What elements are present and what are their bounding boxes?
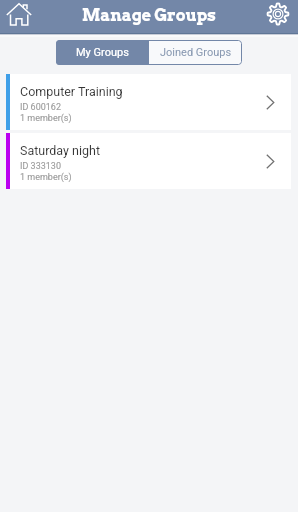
staticText: My Groups [76,46,129,59]
staticText: 1 member(s) [20,172,72,183]
staticText: Computer Training [20,84,123,99]
button[interactable]: My Groups [56,40,149,65]
button[interactable]: Computer Training [6,74,291,130]
button[interactable]: Saturday night [6,133,291,189]
staticText: ID 333130 [20,161,61,172]
staticText: 1 member(s) [20,113,72,124]
staticText: Manage Groups [82,6,216,25]
button[interactable]: Joined Groups [149,40,242,65]
staticText: ID 600162 [20,102,61,113]
button[interactable]: Home [1,0,37,28]
staticText: Joined Groups [160,46,232,59]
staticText: Saturday night [20,143,101,158]
button[interactable]: Settings [263,0,293,27]
